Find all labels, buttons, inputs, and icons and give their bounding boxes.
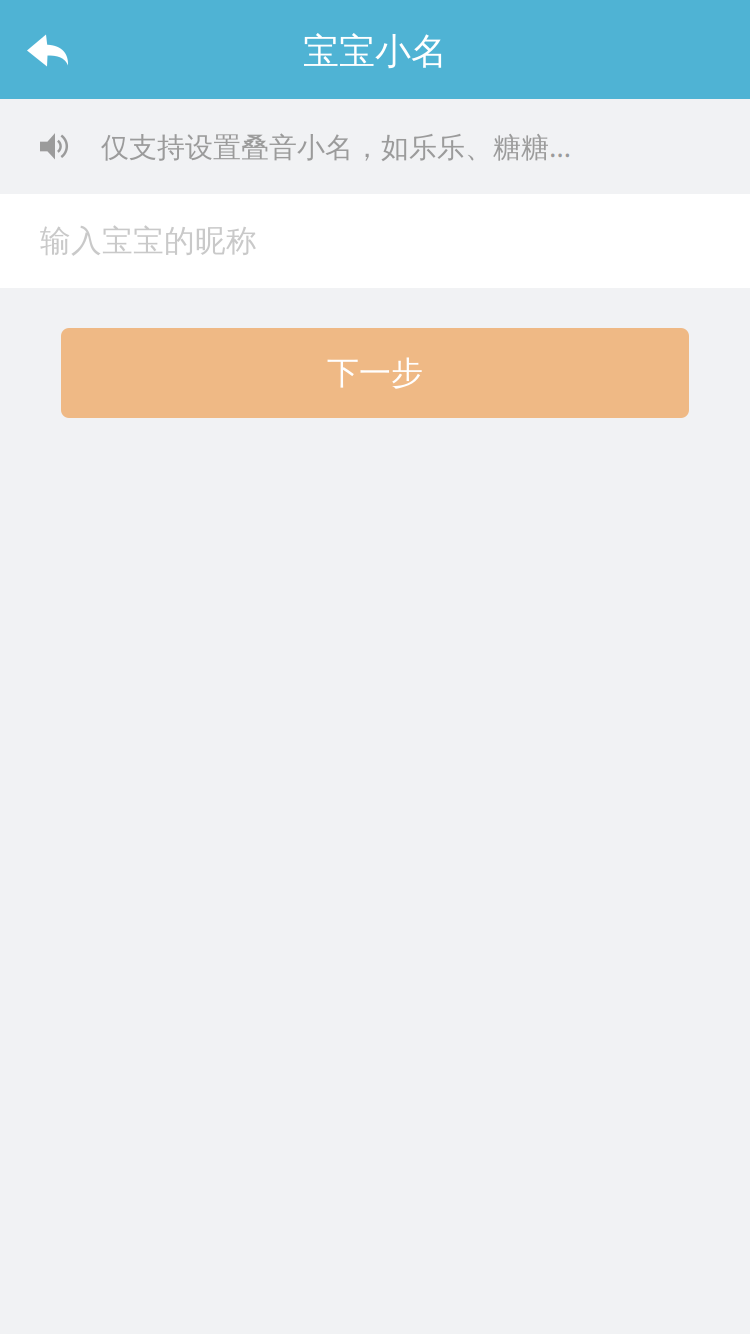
button[interactable]: 下一步	[61, 328, 689, 418]
button[interactable]: 输入宝宝的昵称	[0, 194, 750, 288]
staticText: 宝宝小名	[303, 29, 447, 74]
button[interactable]: Back	[0, 0, 123, 99]
staticText: 仅支持设置叠音小名，如乐乐、糖糖…	[101, 128, 571, 165]
staticText: 输入宝宝的昵称	[40, 222, 257, 260]
staticText: 下一步	[327, 353, 423, 393]
